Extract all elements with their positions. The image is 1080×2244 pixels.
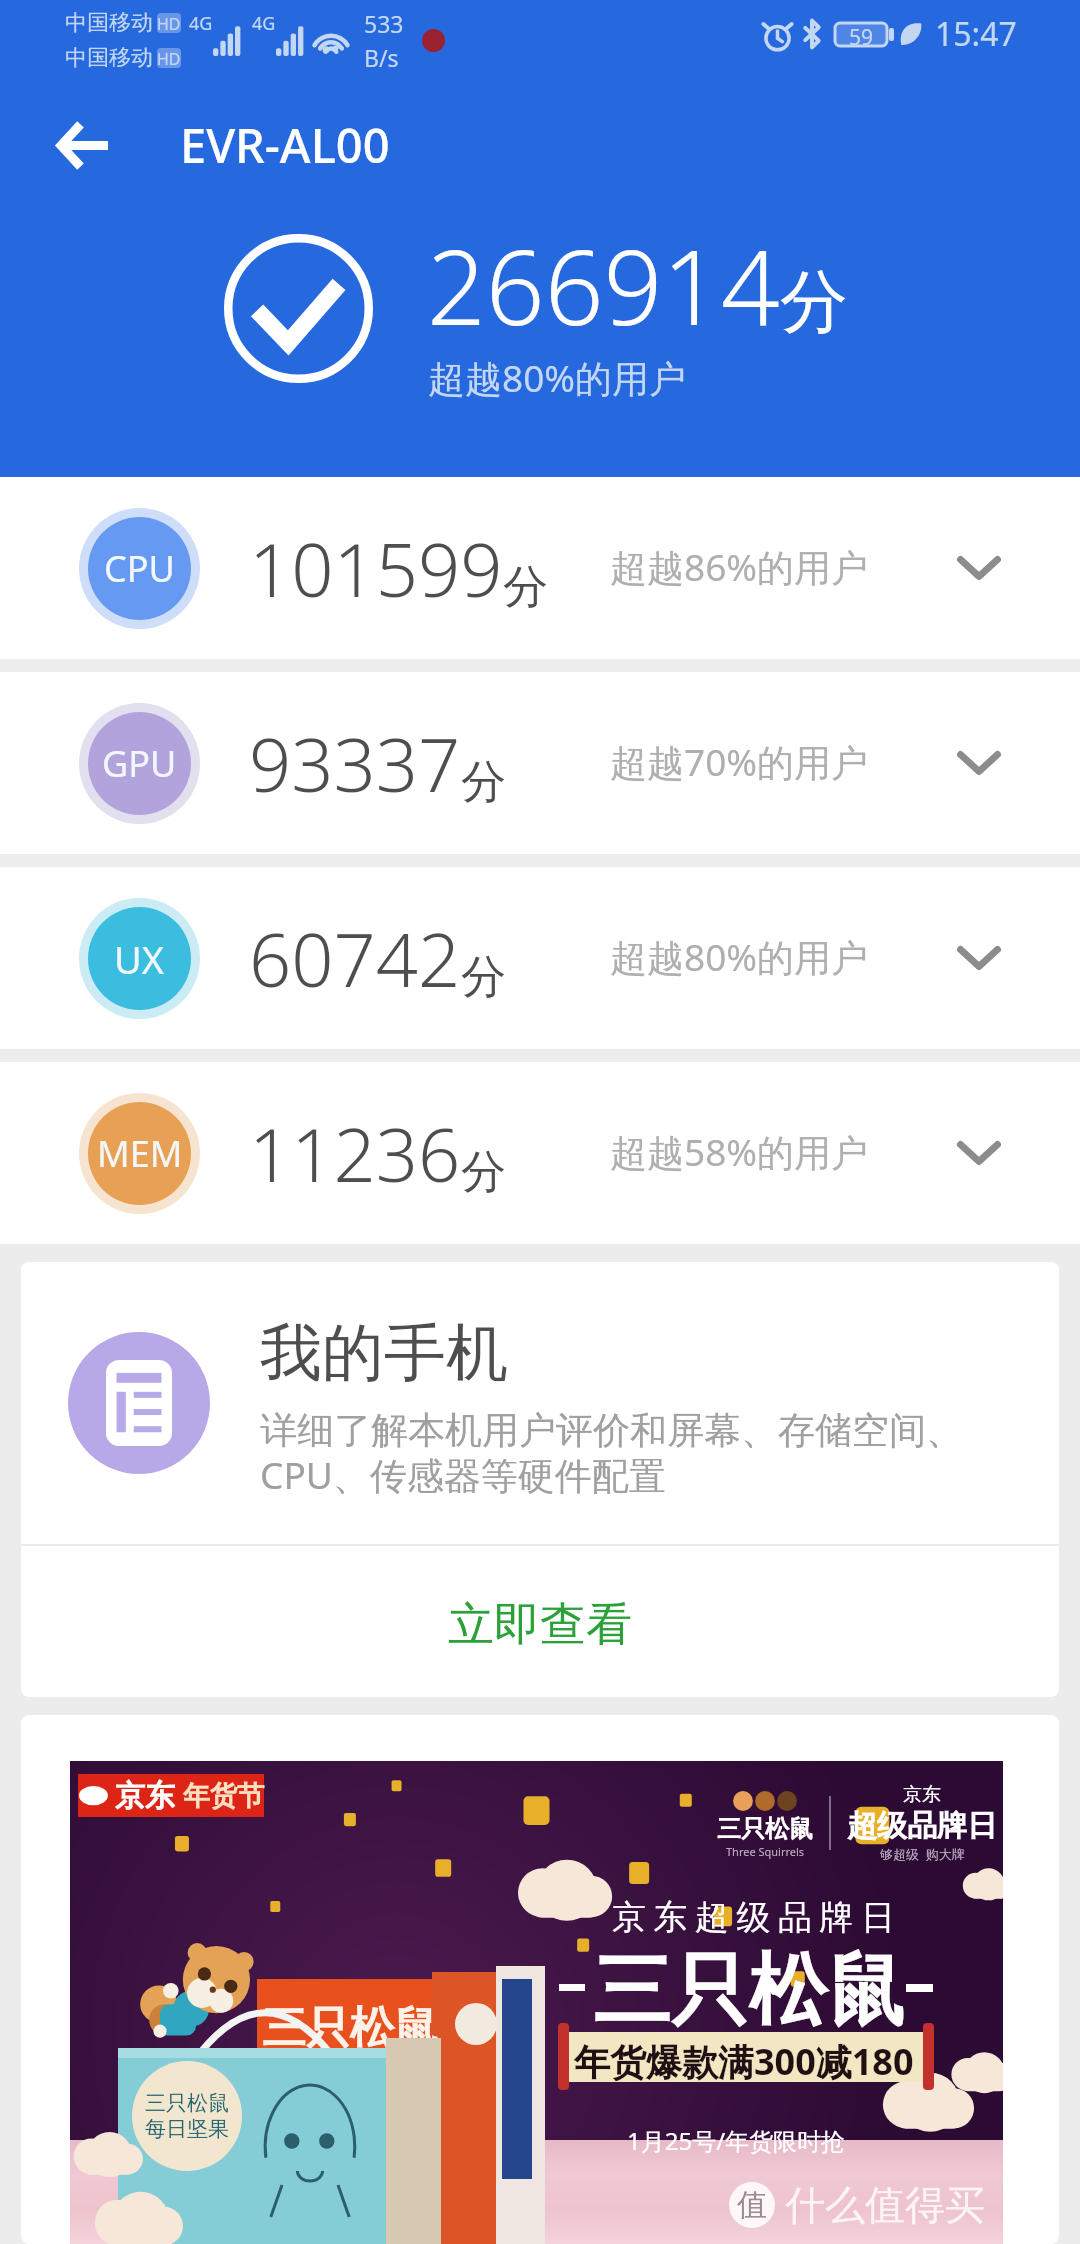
- staticText: 超越86%的用户: [610, 541, 869, 592]
- staticText: 值: [737, 2186, 767, 2224]
- staticText: MEM: [97, 1129, 183, 1178]
- staticText: 年货爆款满300减180: [574, 2037, 914, 2086]
- staticText: 59: [849, 23, 874, 46]
- staticText: 什么值得买: [785, 2180, 985, 2230]
- staticText: 60742: [249, 908, 461, 1009]
- staticText: 三只松鼠: [145, 2090, 229, 2116]
- staticText: 11236: [249, 1103, 461, 1204]
- staticText: UX: [114, 933, 165, 985]
- staticText: 1月25号/年货限时抢: [627, 2124, 846, 2157]
- staticText: GPU: [102, 739, 177, 788]
- staticText: 够超级 购大牌: [880, 1845, 965, 1863]
- staticText: HD: [157, 48, 181, 68]
- staticText: 超越58%的用户: [610, 1126, 869, 1177]
- button[interactable]: UX: [0, 867, 1080, 1049]
- staticText: 分: [780, 260, 848, 346]
- staticText: B/s: [364, 42, 399, 73]
- staticText: 分: [461, 1144, 506, 1201]
- staticText: 京东: [903, 1783, 941, 1807]
- staticText: 分: [461, 949, 506, 1006]
- staticText: 中国移动: [65, 44, 153, 72]
- staticText: HD: [157, 13, 181, 33]
- button[interactable]: 三只松鼠: [21, 1715, 1059, 2244]
- staticText: 超级品牌日: [847, 1807, 997, 1845]
- staticText: Three Squirrels: [726, 1844, 805, 1859]
- button[interactable]: MEM: [0, 1062, 1080, 1244]
- staticText: 我的手机: [260, 1314, 508, 1392]
- staticText: 中国移动: [65, 9, 153, 37]
- staticText: 15:47: [935, 12, 1017, 56]
- staticText: EVR-AL00: [180, 113, 390, 177]
- button[interactable]: Back: [34, 96, 132, 194]
- staticText: 分: [461, 754, 506, 811]
- staticText: CPU: [104, 544, 175, 593]
- staticText: 266914: [427, 215, 780, 355]
- staticText: 三只松鼠: [593, 1942, 905, 2040]
- staticText: 京东超级品牌日: [612, 1896, 903, 1939]
- button[interactable]: Expand: [936, 525, 1022, 611]
- staticText: 详细了解本机用户评价和屏幕、存储空间、 CPU、传感器等硬件配置: [260, 1407, 963, 1500]
- staticText: 年货节: [183, 1779, 264, 1813]
- button[interactable]: 立即查看: [21, 1546, 1059, 1697]
- staticText: 三只松鼠: [262, 2001, 438, 2056]
- button[interactable]: Expand: [936, 720, 1022, 806]
- staticText: 每日坚果: [145, 2116, 229, 2142]
- staticText: 4G: [252, 11, 276, 36]
- staticText: 超越80%的用户: [428, 352, 687, 403]
- staticText: 93337: [249, 713, 461, 814]
- button[interactable]: GPU: [0, 672, 1080, 854]
- button[interactable]: CPU: [0, 477, 1080, 659]
- staticText: 超越80%的用户: [610, 931, 869, 982]
- staticText: 京东: [115, 1777, 175, 1815]
- staticText: 4G: [189, 11, 213, 36]
- staticText: 立即查看: [448, 1596, 632, 1654]
- staticText: 533: [364, 8, 404, 39]
- button[interactable]: Expand: [936, 1110, 1022, 1196]
- button[interactable]: 我的手机: [21, 1262, 1059, 1544]
- staticText: 三只松鼠: [717, 1814, 813, 1844]
- staticText: 超越70%的用户: [610, 736, 869, 787]
- staticText: 分: [503, 559, 548, 616]
- button[interactable]: Expand: [936, 915, 1022, 1001]
- staticText: 101599: [249, 518, 503, 619]
